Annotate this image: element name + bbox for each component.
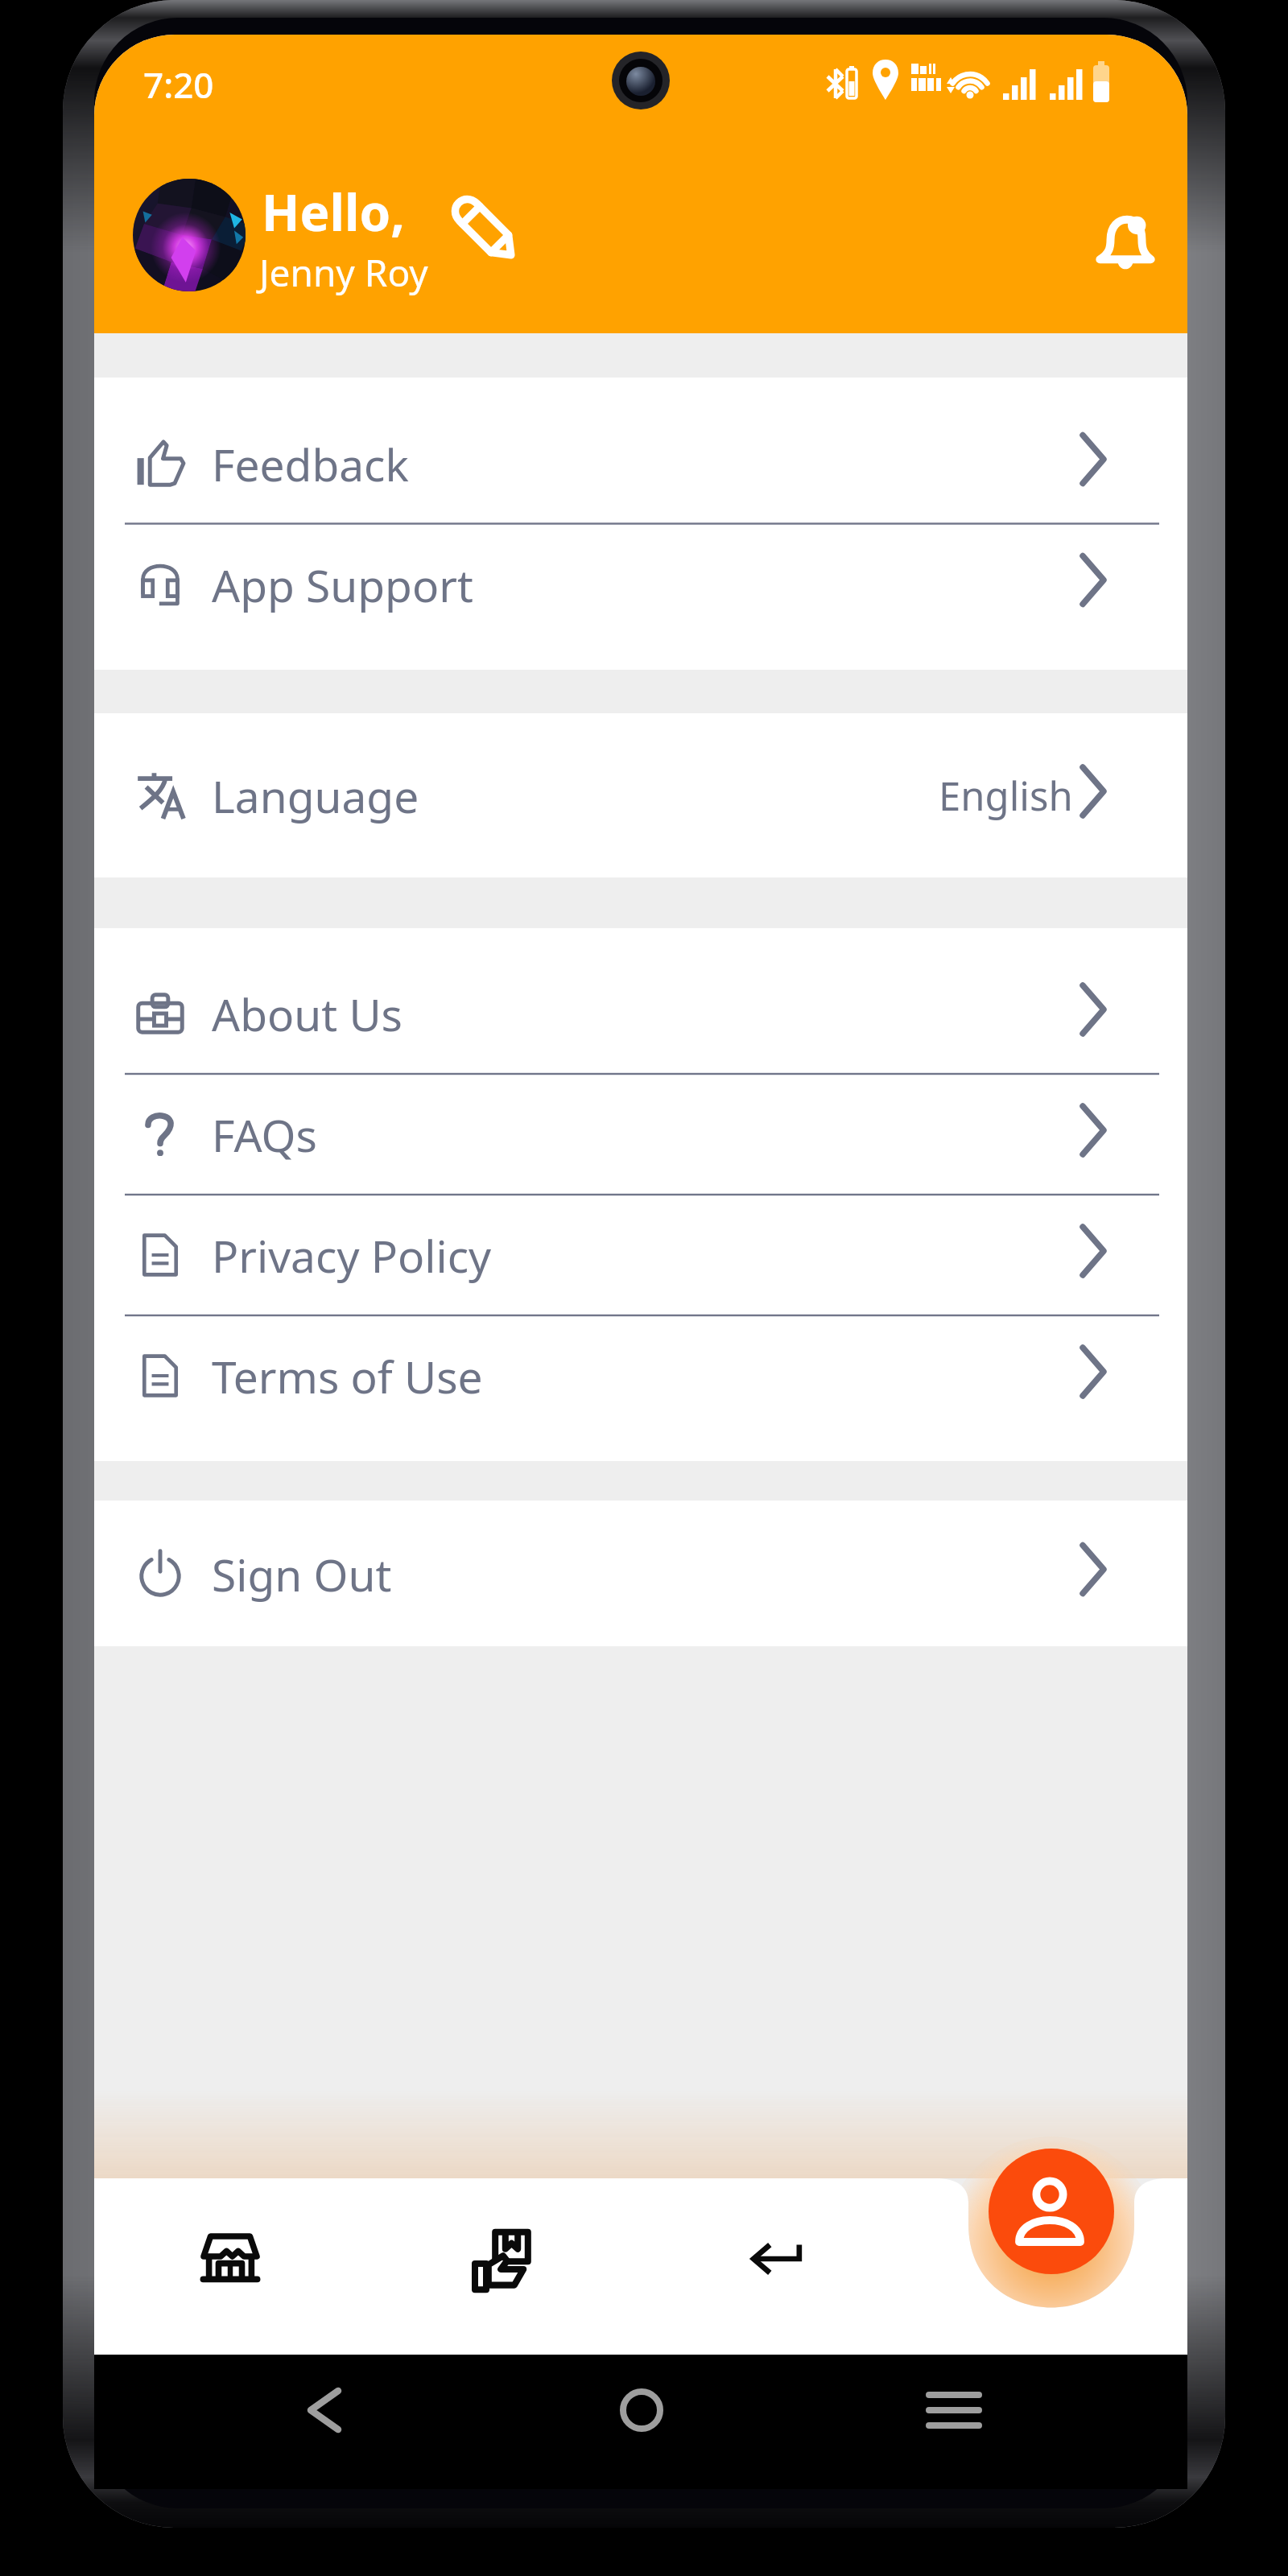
button[interactable]: Profile bbox=[989, 2149, 1114, 2275]
button[interactable] bbox=[94, 524, 1187, 645]
staticText: Jenny Roy bbox=[259, 247, 428, 298]
staticText: Privacy Policy bbox=[212, 1225, 492, 1286]
staticText: Hello, bbox=[262, 178, 405, 246]
staticText: 7:20 bbox=[143, 60, 214, 109]
button[interactable] bbox=[94, 953, 1187, 1074]
staticText: Terms of Use bbox=[212, 1346, 483, 1406]
button[interactable] bbox=[94, 403, 1187, 524]
button[interactable]: Orders bbox=[394, 2190, 636, 2351]
button[interactable]: Store bbox=[121, 2190, 362, 2351]
button[interactable] bbox=[94, 735, 1187, 856]
button[interactable] bbox=[94, 1315, 1187, 1436]
staticText: English bbox=[939, 769, 1073, 823]
button[interactable]: Profile picture bbox=[133, 179, 246, 291]
button[interactable] bbox=[94, 1074, 1187, 1195]
button[interactable]: Notifications bbox=[1079, 189, 1167, 278]
staticText: FAQs bbox=[212, 1104, 317, 1165]
staticText: Language bbox=[212, 766, 419, 826]
button[interactable]: Edit profile bbox=[451, 189, 531, 270]
staticText: About Us bbox=[212, 984, 402, 1044]
button[interactable]: Returns bbox=[668, 2190, 910, 2351]
staticText: App Support bbox=[212, 555, 473, 615]
staticText: Feedback bbox=[212, 434, 409, 494]
staticText: Sign Out bbox=[212, 1544, 392, 1604]
button[interactable] bbox=[94, 1195, 1187, 1315]
button[interactable] bbox=[94, 1513, 1187, 1634]
